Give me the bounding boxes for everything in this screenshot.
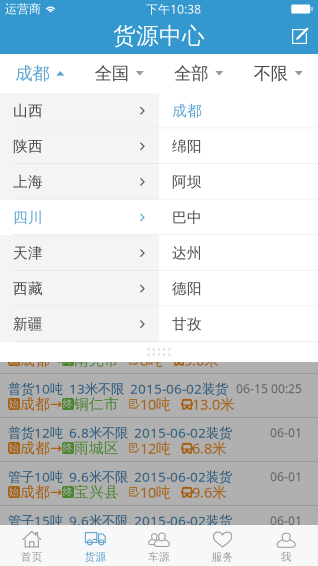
staticText: 全国 [95, 63, 129, 84]
staticText: 成都 [20, 527, 50, 545]
staticText: 达州 [172, 244, 202, 262]
staticText: 甘孜 [172, 315, 202, 333]
button[interactable]: 绵阳 [159, 129, 318, 164]
staticText: 15吨 [140, 526, 171, 546]
staticText: 终 [62, 353, 73, 366]
staticText: 06-15 00:25 [236, 380, 302, 396]
staticText: 普货12吨 6.8米不限 2015-06-02装货 [8, 424, 232, 441]
button[interactable]: 上海 [0, 164, 159, 200]
staticText: 12吨 [140, 438, 171, 458]
button[interactable]: 管子10吨 9.6米不限 2015-06-02装货 [0, 462, 318, 506]
button[interactable]: 达州 [159, 235, 318, 271]
staticText: 首页 [21, 550, 43, 564]
button[interactable]: 普货10吨 13米不限 2015-06-02装货 [0, 374, 318, 418]
staticText: 成都 [20, 395, 50, 413]
button[interactable]: 服务 [191, 525, 254, 566]
staticText: 新疆 [13, 315, 43, 333]
staticText: → [50, 396, 62, 412]
staticText: 铜仁市 [74, 395, 119, 413]
staticText: 巴中 [172, 208, 202, 226]
staticText: 06-01 [270, 468, 302, 484]
button[interactable]: 我 [254, 525, 318, 566]
staticText: 车源 [148, 550, 170, 564]
staticText: 13.0米 [192, 394, 235, 414]
staticText: 06-01 [270, 424, 302, 440]
staticText: 货源中心 [113, 22, 205, 50]
staticText: 成都 [20, 483, 50, 501]
staticText: 终 [62, 397, 73, 410]
staticText: 终 [62, 441, 73, 454]
staticText: 普货8吨 9.6米不限 2015-06-02装货 [8, 336, 224, 353]
staticText: 运营商 [5, 2, 41, 16]
staticText: 南充市 [74, 351, 119, 369]
button[interactable]: 成都 [0, 54, 79, 93]
staticText: 8吨 [140, 350, 163, 370]
staticText: 成都 [20, 351, 50, 369]
staticText: 不限 [254, 63, 288, 84]
staticText: → [50, 352, 62, 368]
staticText: 雨城区 [74, 439, 119, 457]
staticText: 终 [62, 485, 73, 498]
staticText: 9.6米 [192, 482, 227, 502]
staticText: 天津 [13, 244, 43, 262]
staticText: 山西 [13, 102, 43, 120]
staticText: 成都 [20, 439, 50, 457]
staticText: → [50, 484, 62, 500]
button[interactable]: 天津 [0, 235, 159, 271]
staticText: 服务 [212, 550, 234, 564]
staticText: 06-01 [270, 336, 302, 352]
staticText: 管子15吨 9.6米不限 2015-06-02装货 [8, 512, 232, 529]
button[interactable]: 西藏 [0, 271, 159, 306]
staticText: 管子10吨 9.6米不限 2015-06-02装货 [8, 468, 232, 485]
staticText: 10吨 [140, 394, 171, 414]
button[interactable]: 陕西 [0, 129, 159, 164]
button[interactable]: 不限 [238, 54, 318, 93]
button[interactable]: 全国 [79, 54, 159, 93]
staticText: 全部 [174, 63, 208, 84]
staticText: 货源 [84, 550, 106, 564]
staticText: 成都 [15, 63, 49, 84]
button[interactable]: 甘孜 [159, 306, 318, 342]
staticText: 成都 [172, 102, 202, 120]
staticText: 9.6米 [184, 350, 219, 370]
staticText: 普货10吨 13米不限 2015-06-02装货 [8, 380, 228, 397]
button[interactable]: 巴中 [159, 200, 318, 235]
staticText: 西藏 [13, 280, 43, 298]
button[interactable]: 四川 [0, 200, 159, 235]
staticText: 下午10:38 [146, 1, 201, 17]
button[interactable]: 管子15吨 9.6米不限 2015-06-02装货 [0, 506, 318, 550]
button[interactable]: 德阳 [159, 271, 318, 306]
staticText: 始 [8, 485, 19, 498]
button[interactable]: 普货8吨 9.6米不限 2015-06-02装货 [0, 330, 318, 374]
staticText: 绵阳 [172, 137, 202, 155]
staticText: 10吨 [140, 482, 171, 502]
staticText: 四川 [13, 208, 43, 226]
staticText: → [50, 440, 62, 456]
staticText: 6.8米 [192, 438, 227, 458]
staticText: 雅安市 [74, 527, 119, 545]
button[interactable]: 新疆 [0, 306, 159, 342]
staticText: 上海 [13, 173, 43, 191]
staticText: 陕西 [13, 137, 43, 155]
staticText: 阿坝 [172, 173, 202, 191]
staticText: 06-01 [270, 512, 302, 528]
button[interactable]: 全部 [159, 54, 238, 93]
staticText: 宝兴县 [74, 483, 119, 501]
button[interactable]: 普货12吨 6.8米不限 2015-06-02装货 [0, 418, 318, 462]
staticText: 始 [8, 353, 19, 366]
button[interactable]: 阿坝 [159, 164, 318, 200]
button[interactable]: 车源 [127, 525, 191, 566]
staticText: 始 [8, 397, 19, 410]
staticText: 我 [281, 550, 292, 564]
button[interactable]: 成都 [159, 93, 318, 129]
button[interactable]: Compose [282, 19, 318, 53]
staticText: 始 [8, 441, 19, 454]
staticText: 德阳 [172, 280, 202, 298]
button[interactable]: 货源 [64, 525, 127, 566]
button[interactable]: 首页 [0, 525, 64, 566]
staticText: 9.6米 [192, 526, 227, 546]
button[interactable]: 山西 [0, 93, 159, 129]
